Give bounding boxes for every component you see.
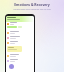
button[interactable] [7,22,33,25]
button[interactable]: Mood [9,64,14,69]
staticText: Emotions & Recovery [0,2,64,7]
button[interactable] [7,54,33,57]
button[interactable] [7,46,22,52]
button[interactable] [7,41,33,44]
button[interactable] [7,31,33,34]
button[interactable] [7,36,33,39]
button[interactable] [7,59,33,62]
staticText: Understand your feelings day by day [0,8,64,11]
